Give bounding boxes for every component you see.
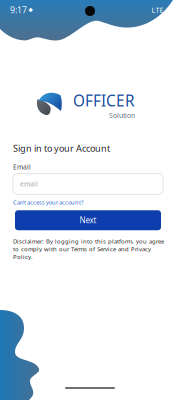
staticText: Next (79, 215, 96, 226)
button[interactable]: Next (15, 210, 161, 230)
button[interactable]: Can't access your account? (13, 194, 83, 208)
staticText: 9:17 (10, 4, 27, 16)
staticText: email (20, 179, 38, 188)
staticText: Disclaimer: By logging into this platfor… (13, 237, 164, 261)
staticText: Can't access your account? (13, 198, 83, 206)
staticText: Sign in to your Account (13, 142, 110, 154)
staticText: LTE (151, 5, 163, 15)
staticText: OFFICER (73, 90, 135, 111)
staticText: Email (13, 162, 31, 171)
staticText: Solution (109, 111, 135, 120)
